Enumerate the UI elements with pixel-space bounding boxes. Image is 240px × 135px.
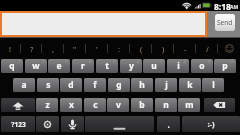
staticText: l <box>212 79 215 91</box>
staticText: u <box>151 60 157 72</box>
button[interactable]: l <box>202 78 224 92</box>
staticText: t <box>105 60 109 72</box>
staticText: k <box>187 79 193 91</box>
button[interactable]: ' <box>86 38 108 59</box>
staticText: ( <box>140 44 143 54</box>
staticText: 1 <box>18 59 21 64</box>
staticText: q <box>9 60 15 72</box>
button[interactable]: k <box>179 78 201 92</box>
button[interactable]: ( <box>130 38 152 59</box>
staticText: 7 <box>160 59 163 64</box>
staticText: , <box>52 44 55 54</box>
button[interactable]: a <box>13 78 35 92</box>
staticText: ? <box>30 44 34 54</box>
staticText: d <box>68 79 74 91</box>
staticText: :-) <box>207 119 215 129</box>
button[interactable]: i <box>167 59 189 73</box>
staticText: f <box>93 79 97 91</box>
staticText: ' <box>96 44 98 54</box>
staticText: j <box>165 79 168 91</box>
button[interactable]: w <box>25 59 47 73</box>
button[interactable]: Backspace <box>204 98 235 112</box>
button[interactable]: y <box>120 59 142 73</box>
button[interactable]: m <box>178 98 200 112</box>
staticText: n <box>163 99 169 111</box>
staticText: x <box>69 99 74 111</box>
button[interactable]: f <box>84 78 106 92</box>
staticText: g <box>116 79 122 91</box>
button[interactable]: Send <box>215 14 235 31</box>
staticText: 6 <box>137 59 140 64</box>
button[interactable]: h <box>131 78 153 92</box>
staticText: w <box>32 60 40 72</box>
staticText: - <box>184 44 187 54</box>
staticText: 5 <box>113 59 116 64</box>
staticText: m <box>185 99 194 111</box>
staticText: h <box>139 79 145 91</box>
button[interactable]: . <box>157 116 180 132</box>
staticText: : <box>118 44 121 54</box>
staticText: z <box>45 99 50 111</box>
staticText: 0 <box>231 59 234 64</box>
button[interactable]: Emoticon <box>218 38 240 59</box>
button[interactable]: q <box>1 59 23 73</box>
staticText: a <box>21 79 27 91</box>
staticText: " <box>73 44 77 54</box>
button[interactable]: c <box>84 98 106 112</box>
button[interactable]: u <box>143 59 165 73</box>
button[interactable]: ! <box>0 38 21 59</box>
staticText: 2 <box>42 59 45 64</box>
button[interactable]: Shift <box>1 98 35 112</box>
button[interactable]: :-) <box>182 116 240 132</box>
staticText: AM <box>230 4 239 11</box>
staticText: 9 <box>208 59 211 64</box>
button[interactable]: s <box>37 78 59 92</box>
staticText: Send <box>217 18 233 27</box>
button[interactable]: / <box>196 38 218 59</box>
button[interactable]: ) <box>152 38 174 59</box>
staticText: i <box>177 60 180 72</box>
staticText: . <box>167 119 170 130</box>
staticText: r <box>81 60 85 72</box>
button[interactable]: ?123 <box>1 116 35 132</box>
button[interactable]: Settings <box>36 116 59 132</box>
staticText: 8 <box>184 59 187 64</box>
button[interactable]: z <box>36 98 58 112</box>
button[interactable]: o <box>191 59 213 73</box>
button[interactable]: ? <box>21 38 42 59</box>
button[interactable]: : <box>108 38 130 59</box>
button[interactable]: d <box>60 78 82 92</box>
button[interactable]: j <box>155 78 177 92</box>
button[interactable]: n <box>155 98 177 112</box>
button[interactable]: r <box>72 59 94 73</box>
button[interactable]: Voice input <box>61 116 84 132</box>
button[interactable]: x <box>60 98 82 112</box>
button[interactable]: " <box>64 38 86 59</box>
staticText: v <box>116 99 121 111</box>
button[interactable]: - <box>174 38 196 59</box>
staticText: / <box>206 44 209 54</box>
button[interactable]: g <box>108 78 130 92</box>
staticText: b <box>139 99 145 111</box>
staticText: 4 <box>89 59 92 64</box>
button[interactable]: t <box>96 59 118 73</box>
staticText: 8:18 <box>214 1 231 12</box>
button[interactable]: Space <box>85 116 154 132</box>
staticText: ! <box>9 44 12 54</box>
staticText: ?123 <box>11 120 26 129</box>
button[interactable]: b <box>131 98 153 112</box>
staticText: ) <box>162 44 165 54</box>
staticText: o <box>199 60 205 72</box>
button[interactable]: p <box>214 59 236 73</box>
staticText: y <box>129 60 134 72</box>
button[interactable]: , <box>42 38 64 59</box>
staticText: e <box>56 60 62 72</box>
button[interactable]: v <box>107 98 129 112</box>
staticText: p <box>222 60 228 72</box>
staticText: 3 <box>65 59 68 64</box>
button[interactable]: e <box>48 59 70 73</box>
staticText: s <box>46 79 51 91</box>
staticText: c <box>93 99 98 111</box>
